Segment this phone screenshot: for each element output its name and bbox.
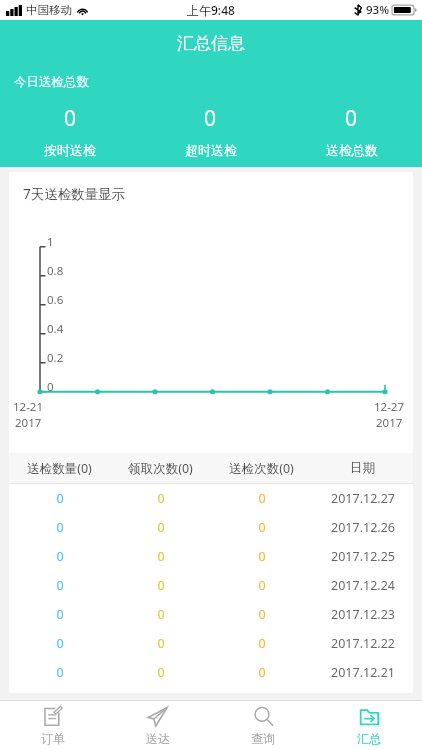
staticText: 0 — [56, 606, 64, 623]
staticText: 0 — [56, 519, 64, 536]
button[interactable]: 0 — [9, 629, 413, 658]
button[interactable]: 0 — [9, 484, 413, 513]
staticText: 送检次数(0) — [229, 460, 294, 477]
staticText: 上午9:48 — [187, 2, 235, 18]
staticText: 0 — [258, 664, 266, 681]
staticText: 汇总信息 — [177, 33, 245, 54]
staticText: 送检总数 — [326, 142, 378, 158]
staticText: 0 — [56, 548, 64, 565]
staticText: 2017 — [15, 415, 42, 431]
button[interactable]: 0 — [281, 104, 422, 158]
button[interactable]: 0 — [9, 600, 413, 629]
button[interactable]: 订单 — [0, 701, 105, 750]
staticText: 0 — [157, 519, 165, 536]
staticText: 0 — [157, 664, 165, 681]
staticText: 2017.12.23 — [331, 606, 395, 623]
staticText: 中国移动 — [26, 3, 72, 17]
staticText: 0 — [258, 490, 266, 507]
staticText: 0 — [64, 104, 77, 133]
button[interactable]: 0 — [9, 658, 413, 687]
staticText: 0 — [157, 635, 165, 652]
button[interactable]: 送达 — [105, 701, 210, 750]
staticText: 0 — [157, 490, 165, 507]
staticText: 0 — [56, 490, 64, 507]
staticText: 查询 — [251, 731, 275, 746]
staticText: 0.4 — [47, 321, 64, 337]
staticText: 0.8 — [47, 263, 64, 279]
staticText: 2017.12.21 — [331, 664, 395, 681]
staticText: 2017.12.22 — [331, 635, 395, 652]
staticText: 12-27 — [374, 399, 405, 415]
staticText: 订单 — [41, 731, 65, 746]
button[interactable]: 0 — [9, 542, 413, 571]
staticText: 送达 — [146, 731, 170, 746]
staticText: 0 — [56, 577, 64, 594]
staticText: 按时送检 — [44, 142, 96, 158]
staticText: 2017.12.24 — [331, 577, 395, 594]
staticText: 2017.12.26 — [331, 519, 395, 536]
staticText: 汇总 — [357, 731, 381, 746]
staticText: 2017.12.27 — [331, 490, 395, 507]
staticText: 0 — [157, 548, 165, 565]
staticText: 领取次数(0) — [128, 460, 193, 477]
staticText: 7天送检数量显示 — [23, 185, 126, 203]
staticText: 0 — [258, 635, 266, 652]
staticText: 12-21 — [13, 399, 44, 415]
staticText: 日期 — [350, 460, 375, 476]
staticText: 送检数量(0) — [27, 460, 92, 477]
staticText: 2017 — [376, 415, 403, 431]
button[interactable]: 汇总 — [316, 701, 422, 750]
staticText: 0 — [47, 379, 54, 395]
staticText: 超时送检 — [185, 142, 237, 158]
button[interactable]: 0 — [0, 104, 140, 158]
staticText: 0 — [157, 577, 165, 594]
staticText: 0 — [56, 635, 64, 652]
button[interactable]: 0 — [9, 571, 413, 600]
staticText: 2017.12.25 — [331, 548, 395, 565]
staticText: 0 — [157, 606, 165, 623]
staticText: 1 — [47, 234, 54, 250]
button[interactable]: 0 — [9, 513, 413, 542]
staticText: 0 — [204, 104, 217, 133]
staticText: 0 — [258, 548, 266, 565]
staticText: 0.6 — [47, 292, 64, 308]
staticText: 0 — [258, 577, 266, 594]
staticText: 0 — [258, 606, 266, 623]
staticText: 0 — [56, 664, 64, 681]
staticText: 0.2 — [47, 350, 64, 366]
button[interactable]: 查询 — [210, 701, 316, 750]
staticText: 0 — [258, 519, 266, 536]
staticText: 0 — [345, 104, 358, 133]
button[interactable]: 0 — [140, 104, 281, 158]
staticText: 今日送检总数 — [14, 74, 89, 90]
staticText: 93% — [366, 2, 389, 18]
